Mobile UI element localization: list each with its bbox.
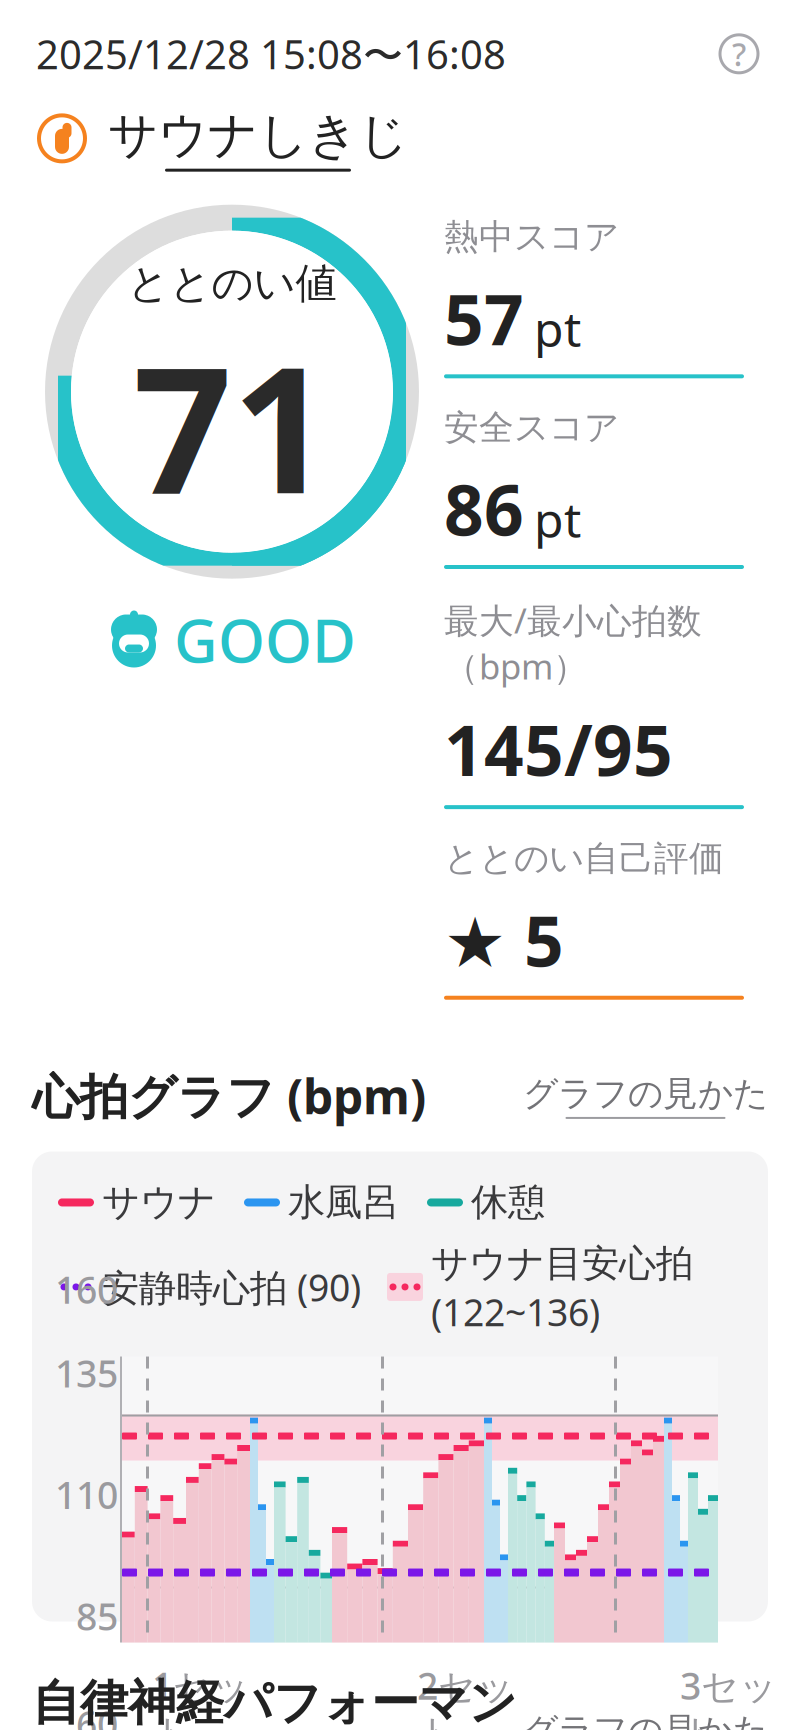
staticText: 水風呂: [288, 1179, 399, 1225]
staticText: ★ 5: [444, 894, 564, 986]
button[interactable]: グラフの見かた: [523, 1709, 768, 1730]
staticText: 3セット: [680, 1660, 777, 1730]
button[interactable]: ヘルプ: [714, 27, 764, 81]
staticText: 60: [76, 1699, 118, 1730]
staticText: グラフの見かた: [523, 1709, 768, 1730]
staticText: 71: [133, 311, 331, 541]
staticText: 心拍グラフ (bpm): [32, 1064, 426, 1127]
staticText: 110: [55, 1470, 118, 1519]
staticText: 最大/最小心拍数（bpm）: [444, 597, 702, 689]
staticText: 安全スコア: [444, 406, 619, 449]
staticText: グラフの見かた: [523, 1072, 768, 1115]
button[interactable]: サウナしきじ: [108, 105, 408, 172]
staticText: 1セット: [152, 1660, 249, 1730]
staticText: 86: [444, 463, 524, 555]
staticText: ?: [732, 33, 746, 75]
staticText: 2025/12/28 15:08〜16:08: [36, 27, 506, 80]
staticText: 安静時心拍 (90): [102, 1262, 361, 1312]
staticText: 160: [55, 1265, 118, 1314]
staticText: サウナ目安心拍 (122~136): [431, 1237, 693, 1337]
staticText: 休憩: [471, 1179, 545, 1225]
staticText: GOOD: [174, 600, 356, 679]
staticText: 熱中スコア: [444, 216, 619, 258]
staticText: pt: [534, 297, 581, 360]
staticText: pt: [534, 487, 581, 551]
button[interactable]: グラフの見かた: [523, 1072, 768, 1119]
staticText: サウナ: [102, 1179, 216, 1225]
staticText: 85: [76, 1591, 118, 1641]
staticText: ととのい値: [127, 258, 336, 309]
staticText: 135: [55, 1348, 118, 1398]
staticText: サウナしきじ: [108, 105, 408, 166]
staticText: 自律神経パフォーマンス: [32, 1673, 517, 1730]
staticText: ととのい自己評価: [444, 837, 724, 880]
staticText: 2セット: [417, 1660, 514, 1730]
staticText: 57: [444, 272, 524, 364]
staticText: 145/95: [444, 703, 673, 795]
